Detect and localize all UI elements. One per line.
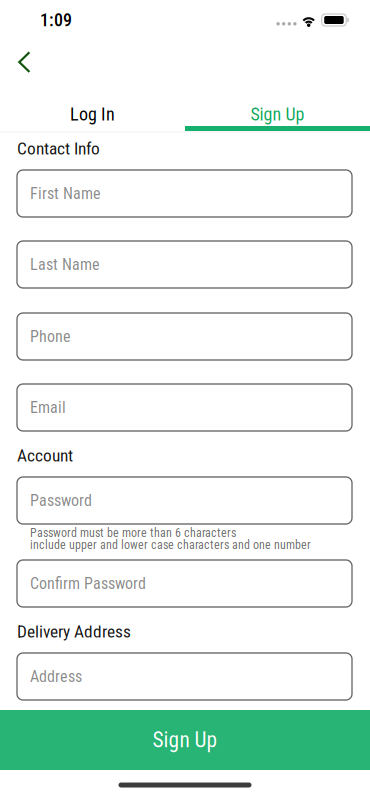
button[interactable]: Address [17, 653, 352, 700]
staticText: First Name [30, 184, 101, 203]
button[interactable]: Confirm Password [17, 560, 352, 607]
button[interactable]: Log In [0, 84, 185, 125]
staticText: Password must be more than 6 characters [30, 526, 236, 540]
button[interactable]: Last Name [17, 241, 352, 288]
staticText: Log In [70, 104, 115, 125]
staticText: Email [30, 398, 66, 417]
staticText: 1:09 [40, 9, 72, 31]
staticText: Delivery Address [17, 621, 131, 642]
button[interactable]: Sign Up [0, 710, 370, 770]
staticText: Phone [30, 327, 71, 346]
staticText: Sign Up [250, 104, 304, 125]
button[interactable]: Back [0, 40, 50, 84]
staticText: Sign Up [152, 727, 217, 752]
staticText: include upper and lower case characters … [30, 538, 311, 552]
button[interactable]: Email [17, 384, 352, 431]
button[interactable]: Sign Up [185, 84, 370, 125]
button[interactable]: First Name [17, 170, 352, 217]
staticText: Address [30, 667, 82, 686]
staticText: Account [17, 445, 73, 466]
button[interactable]: Phone [17, 313, 352, 360]
staticText: Last Name [30, 255, 100, 274]
staticText: Password [30, 491, 92, 510]
button[interactable]: Password [17, 477, 352, 524]
staticText: Contact Info [17, 138, 100, 159]
staticText: Confirm Password [30, 574, 146, 593]
